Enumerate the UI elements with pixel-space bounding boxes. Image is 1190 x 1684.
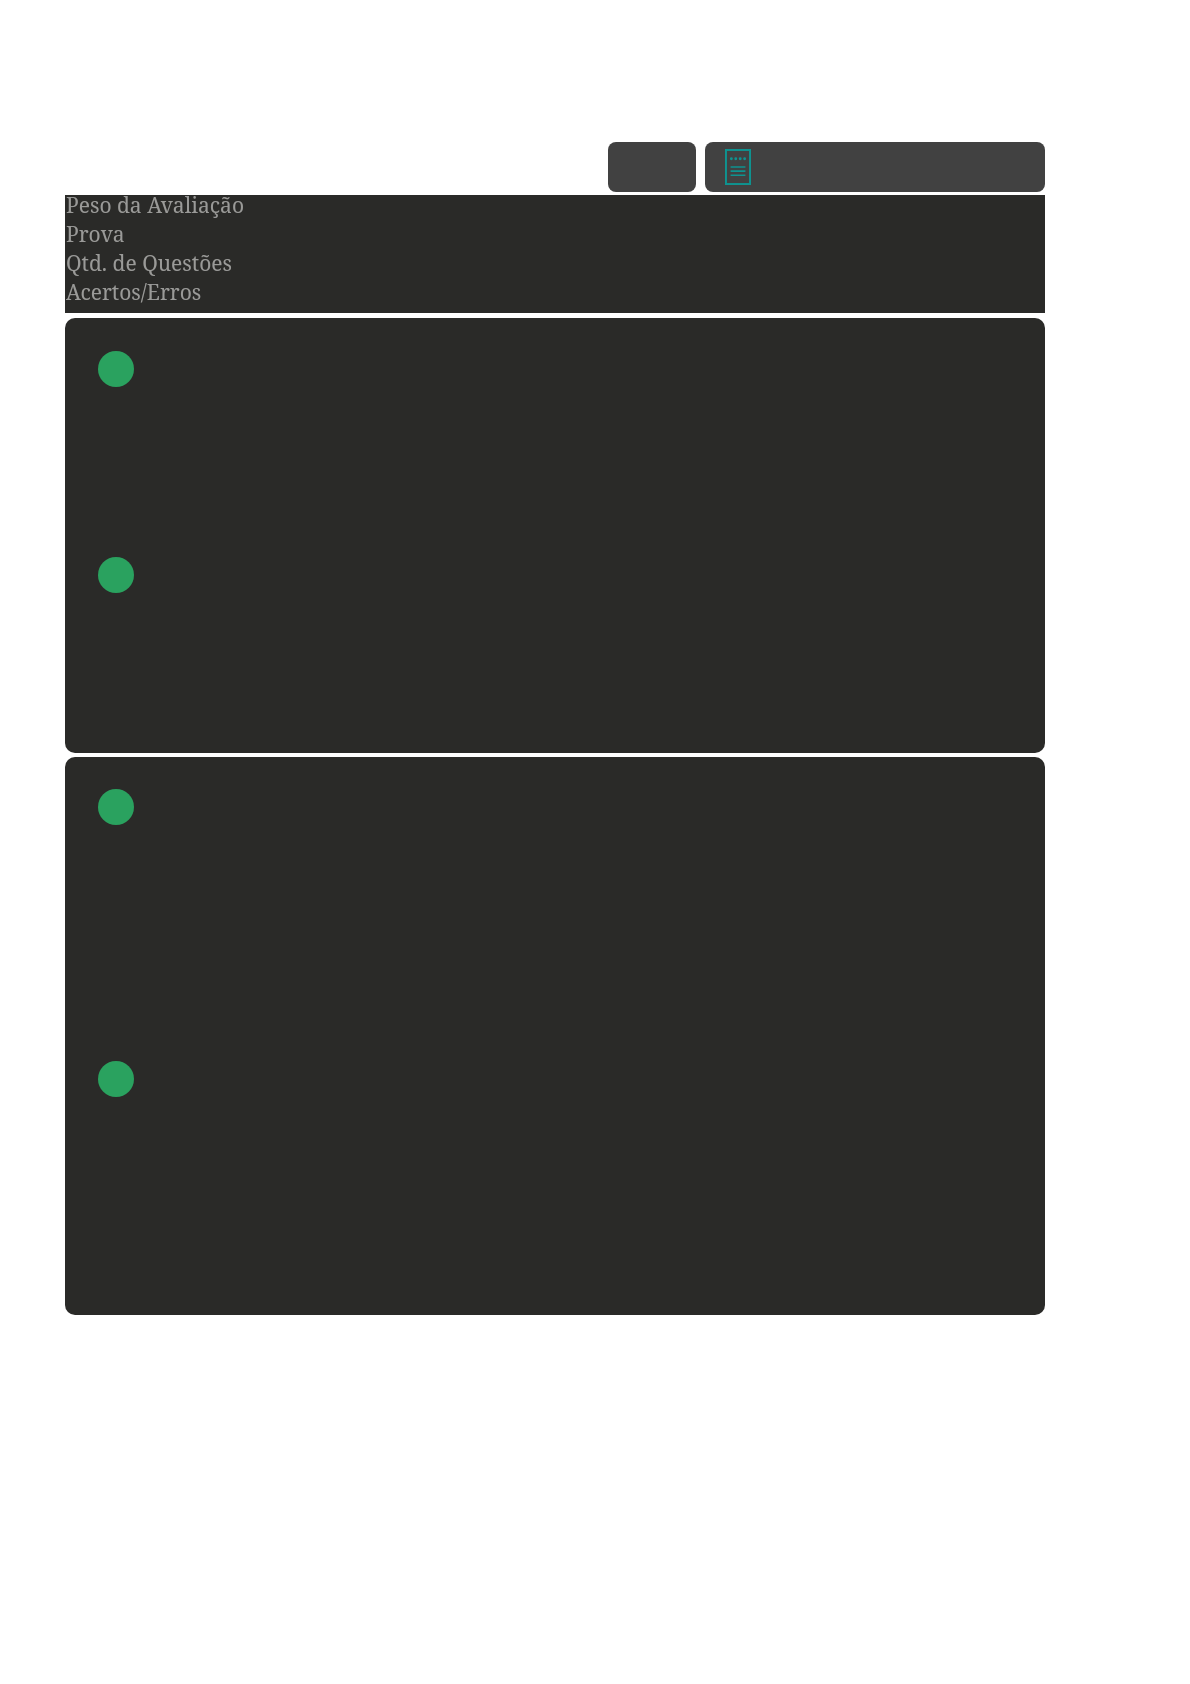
button[interactable]: Opções <box>608 142 696 192</box>
staticText: Peso da Avaliação <box>66 191 244 220</box>
button[interactable] <box>65 757 1045 1315</box>
staticText: Qtd. de Questões <box>66 249 233 278</box>
button[interactable]: Relatório de prova <box>705 142 1045 192</box>
staticText: Acertos/Erros <box>66 278 202 307</box>
button[interactable] <box>65 318 1045 753</box>
staticText: Prova <box>66 220 125 249</box>
